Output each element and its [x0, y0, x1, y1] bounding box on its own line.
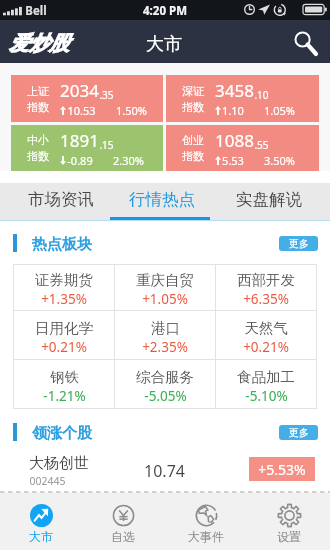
staticText: 创业	[182, 133, 204, 147]
staticText: 1088	[215, 129, 254, 152]
staticText: 证券期货	[35, 271, 93, 289]
staticText: 爱炒股	[9, 31, 69, 56]
staticText: 市场资讯	[28, 189, 94, 210]
button[interactable]: 中小	[11, 125, 163, 171]
button[interactable]: 市场资讯	[8, 183, 114, 221]
staticText: 更多	[289, 426, 309, 439]
staticText: 行情热点	[129, 189, 195, 210]
staticText: 大杨创世	[29, 454, 89, 473]
staticText: +0.21%	[41, 338, 87, 356]
staticText: 实盘解说	[236, 189, 302, 210]
staticText: +1.05%	[142, 290, 188, 308]
button[interactable]: 设置	[247, 493, 330, 550]
button[interactable]: 更多	[279, 425, 318, 440]
button[interactable]: 天然气	[216, 311, 316, 359]
staticText: 指数	[27, 149, 49, 163]
button[interactable]: 上证	[11, 75, 163, 122]
staticText: 指数	[182, 149, 204, 163]
button[interactable]: Search	[289, 20, 325, 63]
button[interactable]: 大杨创世	[0, 451, 330, 491]
staticText: 10.53	[67, 103, 96, 118]
staticText: .35	[99, 88, 114, 102]
staticText: 4:20 PM	[143, 3, 187, 19]
staticText: +6.35%	[243, 290, 289, 308]
button[interactable]: 更多	[279, 236, 318, 251]
staticText: 领涨个股	[32, 424, 92, 443]
staticText: +1.35%	[41, 290, 87, 308]
staticText: .10	[254, 88, 269, 102]
button[interactable]: 综合服务	[115, 360, 215, 408]
staticText: 1.10	[222, 103, 244, 118]
staticText: 深证	[182, 84, 204, 98]
staticText: .15	[99, 138, 114, 152]
staticText: 大事件	[188, 529, 224, 544]
staticText: 天然气	[244, 319, 288, 337]
staticText: 西部开发	[237, 271, 295, 289]
button[interactable]: 深证	[166, 75, 319, 122]
staticText: +2.35%	[142, 338, 188, 356]
button[interactable]: 行情热点	[114, 183, 209, 221]
staticText: Bell	[25, 3, 47, 19]
button[interactable]: 大事件	[164, 493, 247, 550]
staticText: 食品加工	[237, 368, 295, 386]
staticText: -0.89	[67, 153, 93, 168]
button[interactable]: 钢铁	[14, 360, 114, 408]
staticText: 钢铁	[50, 368, 79, 386]
staticText: 上证	[27, 84, 49, 98]
staticText: 3458	[215, 79, 254, 102]
staticText: 日用化学	[35, 319, 93, 337]
staticText: 2034	[60, 79, 99, 102]
staticText: 中小	[27, 133, 49, 147]
staticText: 5.53	[222, 153, 244, 168]
button[interactable]: 证券期货	[14, 265, 114, 310]
button[interactable]: 西部开发	[216, 265, 316, 310]
button[interactable]: 大市	[0, 493, 82, 550]
button[interactable]: 自选	[82, 493, 164, 550]
staticText: 设置	[277, 529, 301, 544]
staticText: 002445	[29, 474, 66, 488]
staticText: 大市	[146, 33, 182, 56]
button[interactable]: 实盘解说	[212, 183, 325, 221]
button[interactable]: 重庆自贸	[115, 265, 215, 310]
staticText: .55	[254, 138, 269, 152]
staticText: 指数	[27, 100, 49, 114]
staticText: 指数	[182, 100, 204, 114]
staticText: 3.50%	[264, 153, 295, 168]
button[interactable]: 食品加工	[216, 360, 316, 408]
staticText: 重庆自贸	[136, 271, 194, 289]
staticText: 更多	[289, 237, 309, 250]
staticText: 热点板块	[32, 235, 92, 254]
staticText: 大市	[29, 529, 53, 544]
staticText: -5.05%	[144, 387, 187, 405]
staticText: 1891	[60, 129, 99, 152]
staticText: 10.74	[144, 460, 185, 482]
staticText: +5.53%	[258, 460, 306, 479]
staticText: 自选	[111, 529, 135, 544]
button[interactable]: 创业	[166, 125, 319, 171]
staticText: 港口	[151, 319, 180, 337]
staticText: -1.21%	[43, 387, 86, 405]
staticText: 1.50%	[116, 103, 147, 118]
staticText: 综合服务	[136, 368, 194, 386]
staticText: 1.05%	[264, 103, 295, 118]
button[interactable]: 港口	[115, 311, 215, 359]
staticText: +0.21%	[243, 338, 289, 356]
staticText: -5.10%	[245, 387, 288, 405]
button[interactable]: 日用化学	[14, 311, 114, 359]
staticText: 2.30%	[113, 153, 144, 168]
